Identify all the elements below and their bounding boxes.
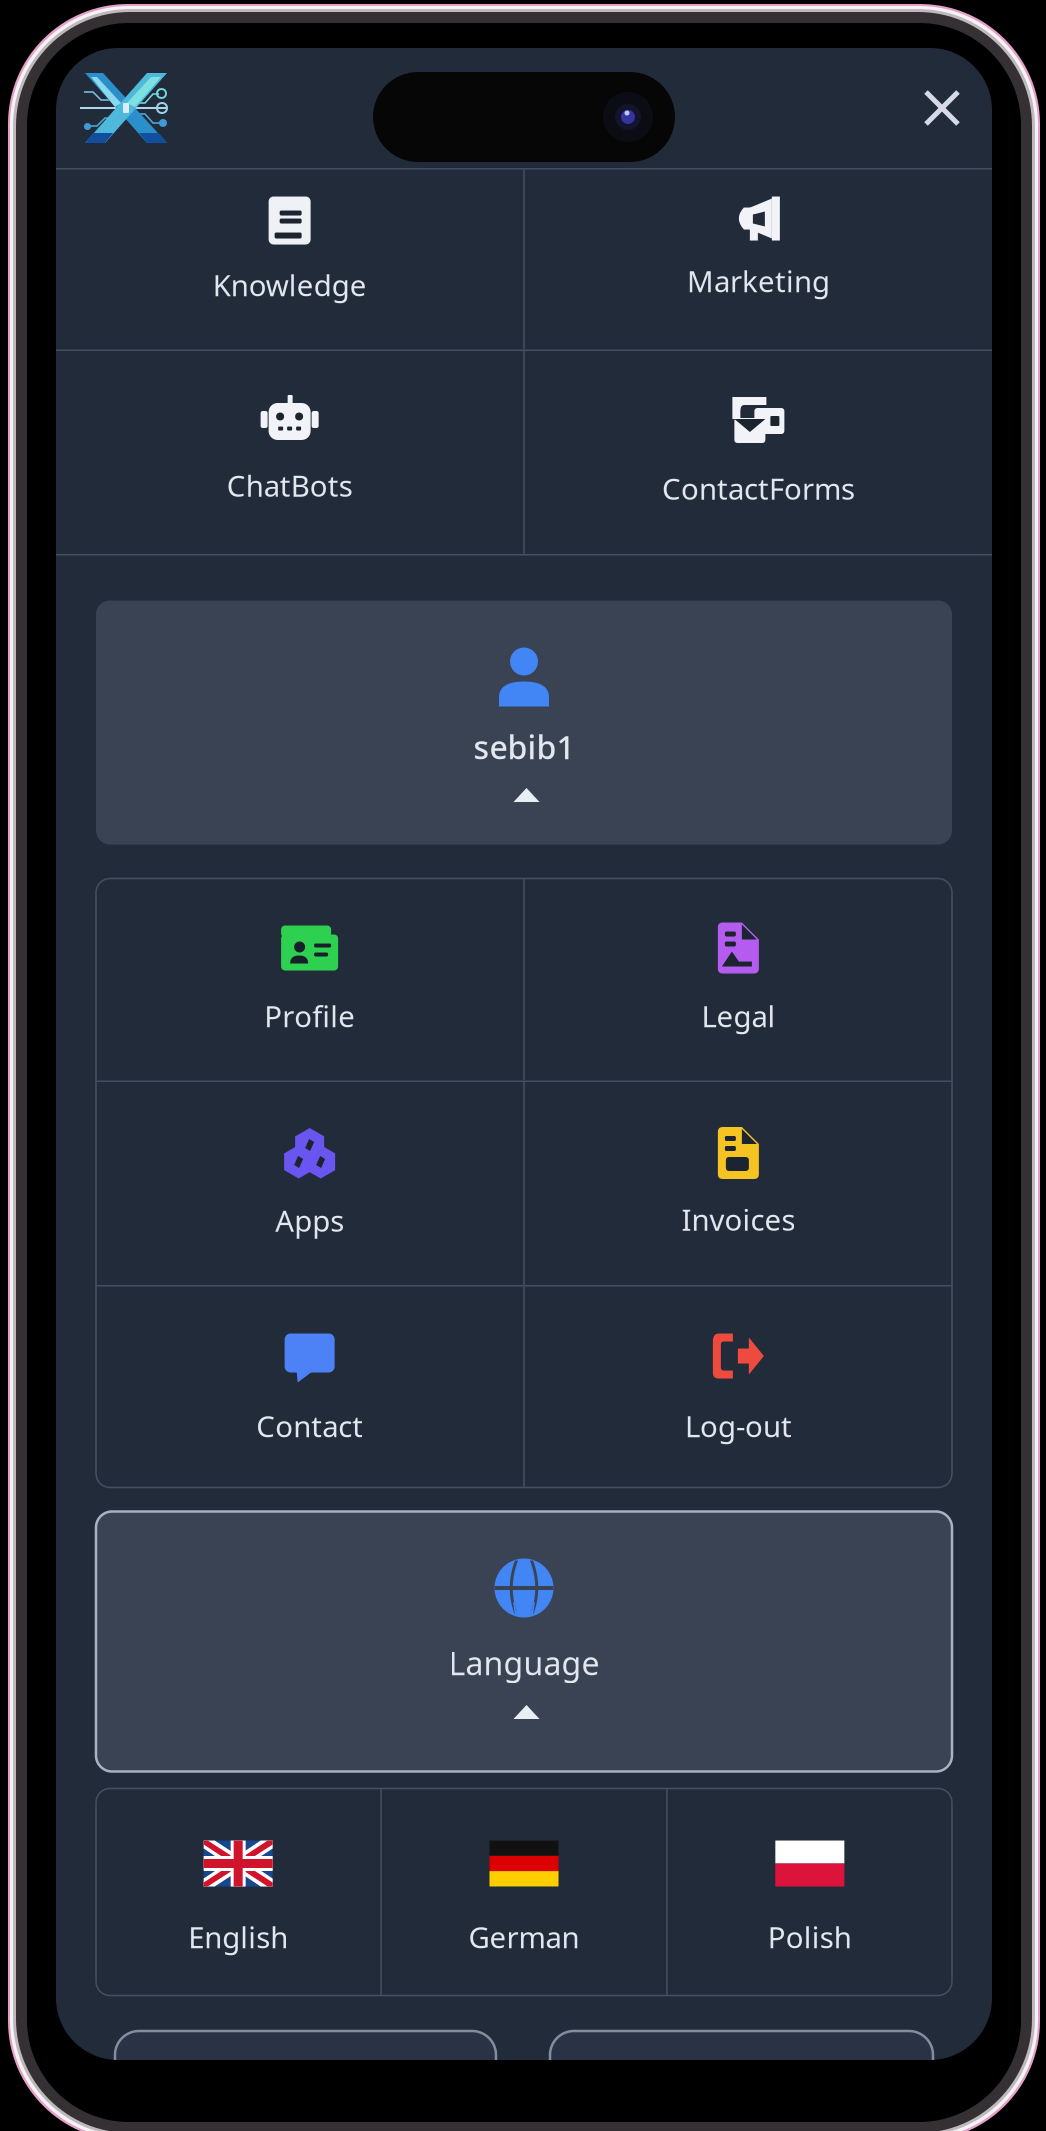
button[interactable]: German: [382, 1788, 666, 1995]
staticText: Contact: [256, 1406, 363, 1445]
staticText: German: [468, 1917, 579, 1956]
button[interactable]: Primary action: [115, 2031, 496, 2131]
staticText: Log-out: [685, 1406, 792, 1445]
button[interactable]: Legal: [525, 878, 952, 1080]
button[interactable]: Polish: [668, 1788, 952, 1995]
button[interactable]: Contact: [96, 1286, 523, 1487]
button[interactable]: Invoices: [525, 1082, 952, 1285]
button[interactable]: Secondary action: [550, 2031, 933, 2131]
button[interactable]: sebib1: [96, 600, 952, 844]
button[interactable]: Language: [96, 1511, 952, 1771]
staticText: ChatBots: [227, 466, 353, 505]
button[interactable]: ContactForms: [525, 351, 992, 554]
staticText: Profile: [264, 996, 355, 1035]
staticText: Apps: [275, 1201, 344, 1240]
staticText: Polish: [768, 1917, 852, 1956]
staticText: Marketing: [687, 261, 830, 300]
staticText: Legal: [701, 996, 775, 1035]
button[interactable]: Profile: [96, 878, 523, 1080]
button[interactable]: Marketing: [525, 169, 992, 349]
staticText: Knowledge: [213, 265, 367, 304]
button[interactable]: Knowledge: [56, 169, 523, 349]
button[interactable]: Apps: [96, 1082, 523, 1285]
staticText: Invoices: [681, 1200, 795, 1239]
button[interactable]: English: [96, 1788, 380, 1995]
staticText: sebib1: [473, 725, 574, 768]
staticText: English: [188, 1917, 288, 1956]
button[interactable]: ChatBots: [56, 351, 523, 554]
button[interactable]: Close: [906, 72, 978, 144]
staticText: Language: [448, 1641, 599, 1684]
staticText: ContactForms: [662, 469, 855, 508]
button[interactable]: Log-out: [525, 1286, 952, 1487]
